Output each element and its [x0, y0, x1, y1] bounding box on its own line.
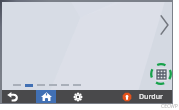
button[interactable]: Back	[2, 90, 34, 103]
button[interactable]: Apps	[150, 63, 172, 85]
button[interactable]: Durdur	[100, 90, 164, 103]
button[interactable]: Home	[36, 90, 56, 103]
staticText: CECWP	[161, 103, 178, 110]
button[interactable]: Next page	[157, 14, 171, 36]
button[interactable]: Settings	[56, 90, 100, 103]
staticText: Durdur	[139, 92, 164, 102]
